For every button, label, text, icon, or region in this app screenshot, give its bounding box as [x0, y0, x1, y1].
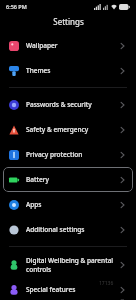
staticText: Settings	[53, 16, 84, 27]
button[interactable]: Digital Wellbeing & parental controls	[0, 251, 136, 279]
staticText: Privacy protection	[26, 150, 120, 159]
staticText: Digital Wellbeing & parental controls	[26, 256, 120, 274]
staticText: Special features	[26, 285, 120, 294]
button[interactable]: Additional settings	[0, 217, 136, 242]
button[interactable]: Special features	[0, 279, 136, 300]
staticText: Battery	[26, 175, 120, 184]
button[interactable]: Safety & emergency	[0, 117, 136, 142]
button[interactable]: Apps	[0, 192, 136, 217]
staticText: Apps	[26, 200, 120, 209]
staticText: 17136	[99, 280, 114, 287]
button[interactable]: Privacy protection	[0, 142, 136, 167]
staticText: Safety & emergency	[26, 125, 120, 134]
staticText: 6:56 PM	[6, 3, 27, 10]
staticText: Themes	[26, 66, 120, 75]
button[interactable]: Passwords & security	[0, 92, 136, 117]
staticText: Passwords & security	[26, 100, 120, 109]
button[interactable]: Battery	[3, 167, 133, 192]
button[interactable]: Themes	[0, 58, 136, 83]
staticText: Wallpaper	[26, 41, 120, 50]
staticText: Additional settings	[26, 225, 120, 234]
button[interactable]: Wallpaper	[0, 33, 136, 58]
